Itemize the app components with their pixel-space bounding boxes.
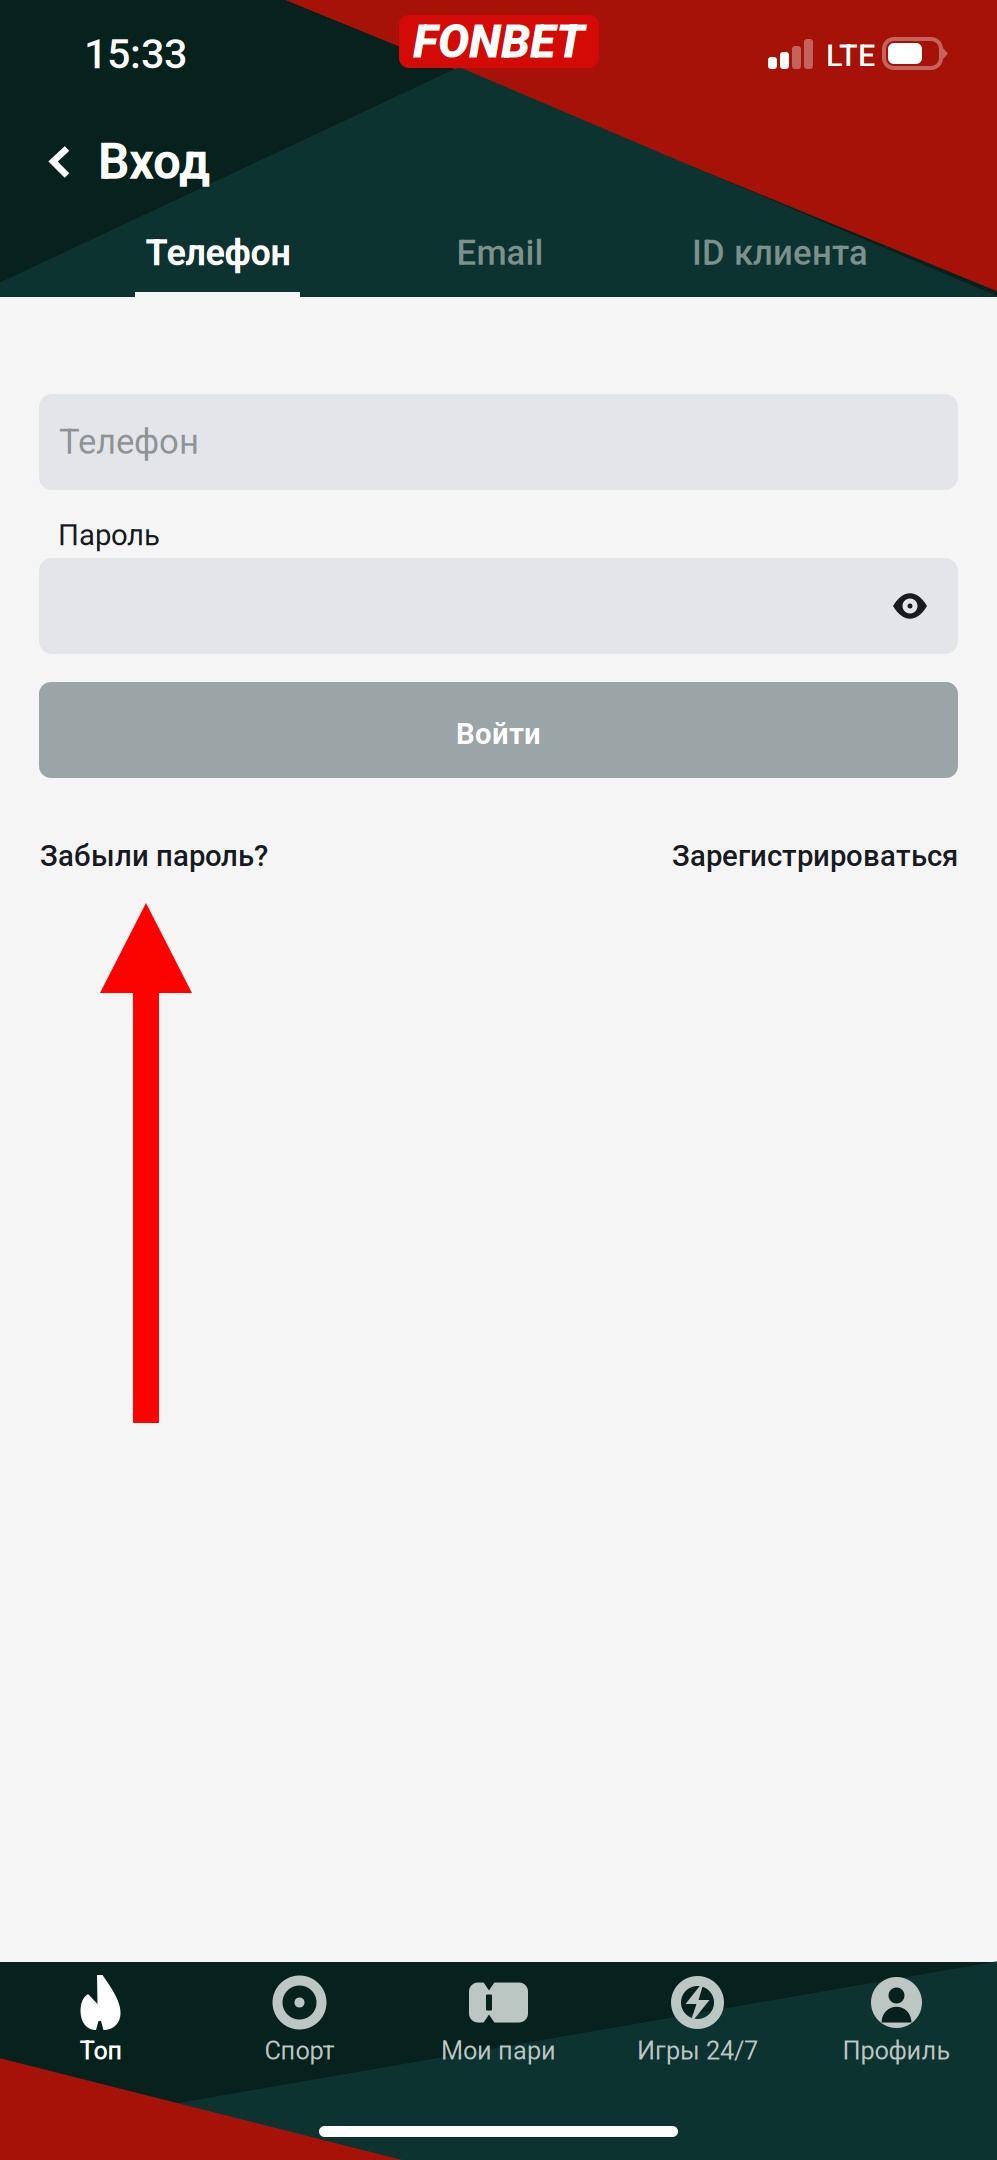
button[interactable]: Телефон [104, 206, 332, 297]
button[interactable]: Вход [0, 118, 300, 206]
staticText: Телефон [59, 422, 199, 462]
staticText: Топ [79, 2036, 121, 2066]
button[interactable]: Забыли пароль? [40, 834, 268, 878]
staticText: LTE [826, 38, 875, 74]
staticText: Мои пари [441, 2036, 556, 2066]
staticText: Профиль [842, 2036, 950, 2066]
staticText: Вход [98, 133, 210, 191]
staticText: Телефон [145, 232, 290, 274]
button[interactable]: Войти [39, 682, 958, 778]
button[interactable]: Игры 24/7 [598, 1972, 797, 2082]
button[interactable]: Показать пароль [862, 558, 958, 654]
button[interactable]: Мои пари [399, 1972, 598, 2082]
staticText: Пароль [58, 518, 160, 552]
button[interactable]: Email [386, 206, 614, 297]
button[interactable]: Профиль [797, 1972, 996, 2082]
staticText: Игры 24/7 [637, 2036, 758, 2066]
staticText: Войти [456, 717, 541, 751]
staticText: ID клиента [692, 233, 868, 273]
staticText: Спорт [264, 2036, 334, 2066]
button[interactable]: Спорт [200, 1972, 399, 2082]
button[interactable]: ID клиента [666, 206, 894, 297]
staticText: 15:33 [84, 30, 187, 78]
button[interactable]: Топ [1, 1972, 200, 2082]
staticText: Email [456, 233, 543, 273]
staticText: FONBET [413, 14, 585, 69]
staticText: Забыли пароль? [40, 839, 268, 873]
button[interactable]: Зарегистрироваться [672, 834, 958, 878]
staticText: Зарегистрироваться [672, 839, 958, 873]
